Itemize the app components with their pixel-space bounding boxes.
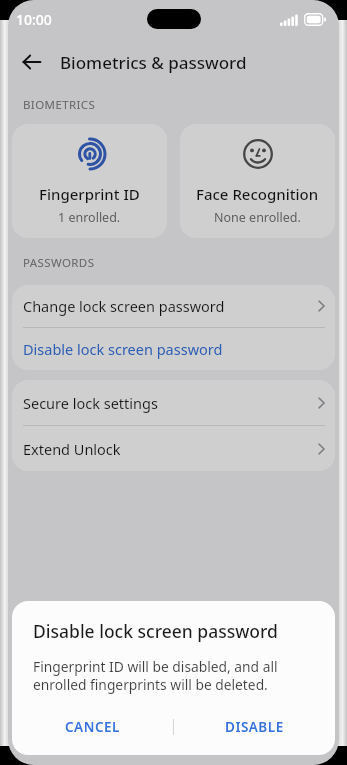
staticText: Fingerprint ID [39,184,140,204]
button[interactable]: Fingerprint ID [12,124,167,238]
staticText: Change lock screen password [23,296,318,316]
staticText: Fingerprint ID will be disabled, and all… [33,657,314,694]
staticText: BIOMETRICS [23,97,96,113]
button[interactable]: Disable lock screen password [12,328,335,370]
staticText: Biometrics & password [60,51,247,74]
button[interactable]: Secure lock settings [12,380,335,425]
button[interactable]: DISABLE [173,705,335,749]
staticText: 10:00 [16,10,52,29]
staticText: Extend Unlock [23,439,318,459]
staticText: Disable lock screen password [23,339,325,359]
button[interactable] [8,38,56,86]
staticText: 1 enrolled. [58,209,121,226]
staticText: CANCEL [65,718,120,736]
button[interactable]: Extend Unlock [12,426,335,471]
staticText: None enrolled. [214,209,301,226]
staticText: Disable lock screen password [33,619,278,643]
staticText: Face Recognition [196,184,319,204]
button[interactable]: Change lock screen password [12,285,335,327]
staticText: PASSWORDS [23,255,95,271]
staticText: Secure lock settings [23,393,318,413]
staticText: DISABLE [225,718,284,736]
button[interactable]: CANCEL [12,705,173,749]
button[interactable]: Face Recognition [180,124,335,238]
